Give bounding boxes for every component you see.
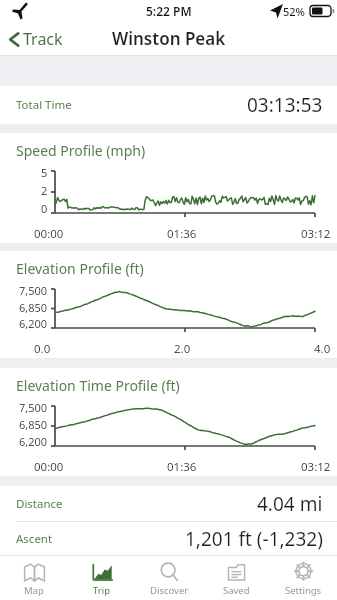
staticText: 6,200 — [19, 434, 48, 449]
staticText: Total Time — [16, 97, 72, 113]
staticText: Ascent — [16, 531, 53, 547]
staticText: 03:13:53 — [247, 92, 323, 118]
staticText: 01:36 — [167, 226, 197, 242]
button[interactable]: Distance — [0, 486, 337, 521]
button[interactable]: Discover — [136, 559, 203, 597]
staticText: 52% — [283, 4, 305, 19]
staticText: Settings — [285, 584, 322, 597]
staticText: 6,850 — [19, 300, 48, 315]
staticText: 01:36 — [167, 459, 197, 475]
staticText: 03:12 — [301, 459, 331, 475]
other: Saved — [225, 562, 248, 583]
staticText: 00:00 — [34, 459, 64, 475]
staticText: 03:12 — [301, 226, 331, 242]
staticText: Saved — [223, 584, 250, 597]
staticText: 2 — [41, 183, 48, 198]
staticText: Winston Peak — [112, 27, 226, 50]
staticText: Distance — [16, 496, 63, 512]
staticText: Speed Profile (mph) — [16, 141, 146, 160]
staticText: 1,201 ft (-1,232) — [185, 526, 323, 552]
button[interactable]: Settings — [270, 559, 337, 597]
button[interactable]: Map — [0, 559, 68, 597]
staticText: 00:00 — [34, 226, 64, 242]
button[interactable]: Track — [5, 23, 66, 55]
staticText: 4.0 — [314, 341, 331, 357]
staticText: Discover — [150, 584, 189, 597]
staticText: 6,850 — [19, 417, 48, 432]
staticText: 5 — [41, 165, 48, 180]
staticText: 0.0 — [34, 341, 51, 357]
other: Settings — [292, 562, 315, 583]
staticText: Track — [23, 28, 63, 50]
other: Map — [23, 562, 46, 583]
staticText: 6,200 — [19, 316, 48, 331]
button[interactable]: Ascent — [0, 522, 337, 555]
staticText: 5:22 PM — [146, 3, 192, 19]
button[interactable]: Trip — [68, 559, 136, 597]
button[interactable]: Total Time — [0, 86, 337, 124]
staticText: 0 — [41, 201, 48, 216]
staticText: 2.0 — [174, 341, 191, 357]
other: Trip — [91, 562, 114, 583]
staticText: 4.04 mi — [257, 491, 323, 517]
staticText: Trip — [93, 584, 111, 597]
staticText: 7,500 — [19, 283, 48, 298]
staticText: Elevation Profile (ft) — [16, 259, 144, 278]
staticText: Map — [24, 584, 44, 597]
button[interactable]: Saved — [203, 559, 270, 597]
staticText: 7,500 — [19, 400, 48, 415]
staticText: Elevation Time Profile (ft) — [16, 376, 180, 395]
other: Discover — [158, 562, 181, 583]
